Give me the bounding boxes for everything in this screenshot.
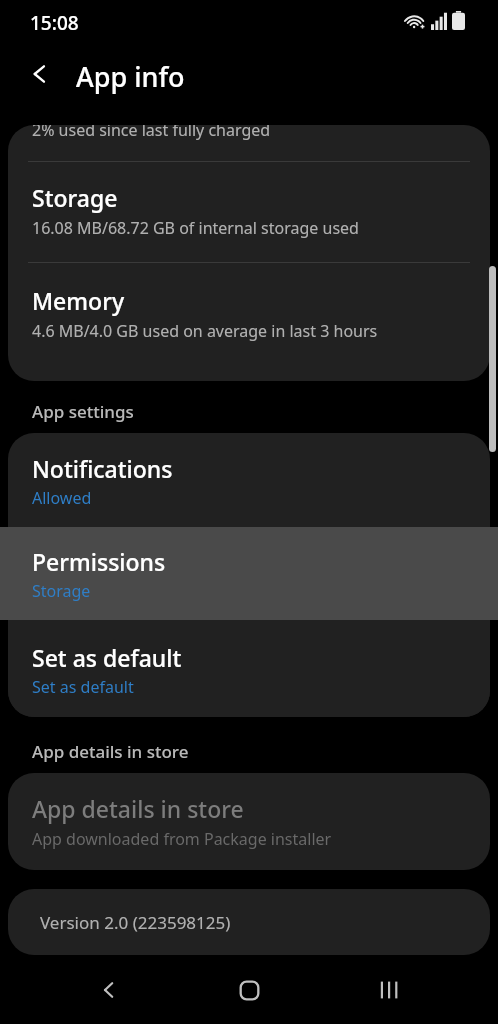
- staticText: 15:08: [30, 10, 79, 36]
- staticText: Notifications: [32, 453, 173, 484]
- staticText: 16.08 MB/68.72 GB of internal storage us…: [32, 217, 359, 239]
- button[interactable]: Memory: [8, 273, 490, 354]
- button[interactable]: Storage: [8, 172, 490, 251]
- staticText: Version 2.0 (223598125): [40, 911, 231, 934]
- staticText: 2% used since last fully charged: [32, 125, 271, 141]
- staticText: Allowed: [32, 487, 92, 509]
- staticText: Set as default: [32, 642, 182, 673]
- staticText: App downloaded from Package installer: [32, 828, 332, 850]
- button[interactable]: Set as default: [8, 620, 490, 717]
- staticText: App info: [76, 58, 185, 95]
- button[interactable]: Permissions: [0, 527, 498, 620]
- button[interactable]: App details in store: [8, 773, 490, 870]
- button[interactable]: Version 2.0 (223598125): [8, 889, 490, 955]
- staticText: Permissions: [32, 546, 166, 577]
- staticText: Set as default: [32, 676, 134, 698]
- staticText: App settings: [32, 400, 134, 423]
- button[interactable]: Notifications: [8, 433, 490, 527]
- staticText: 4.6 MB/4.0 GB used on average in last 3 …: [32, 320, 378, 342]
- staticText: Storage: [32, 580, 91, 602]
- button[interactable]: Home: [219, 956, 279, 1024]
- staticText: Memory: [32, 285, 125, 316]
- button[interactable]: Back: [16, 50, 64, 98]
- staticText: App details in store: [32, 793, 244, 824]
- staticText: App details in store: [32, 740, 189, 763]
- staticText: Storage: [32, 182, 118, 213]
- button[interactable]: Recent apps: [358, 956, 418, 1024]
- button[interactable]: Back: [79, 956, 139, 1024]
